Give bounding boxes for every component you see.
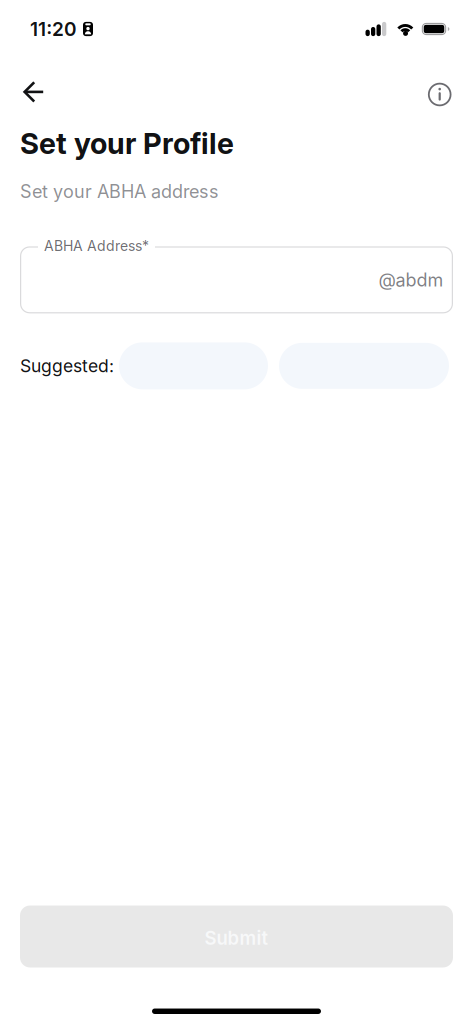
staticText: ABHA Address* xyxy=(44,237,149,254)
staticText: Submit xyxy=(204,927,268,949)
staticText: @abdm xyxy=(378,269,443,291)
staticText: 11:20 xyxy=(30,17,77,40)
staticText: Set your Profile xyxy=(20,126,234,161)
staticText: Suggested: xyxy=(20,355,114,376)
button[interactable]: Back xyxy=(20,80,44,104)
button[interactable]: Info xyxy=(428,83,451,106)
staticText: Set your ABHA address xyxy=(20,181,219,202)
